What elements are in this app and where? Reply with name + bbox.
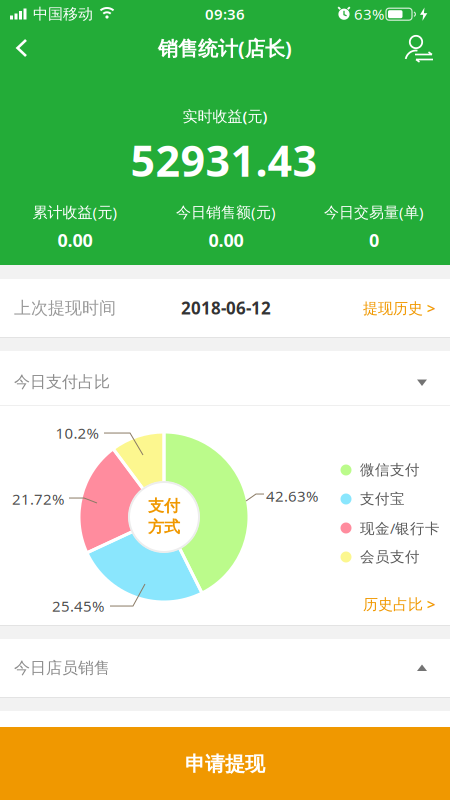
button[interactable]: 历史占比 > — [326, 594, 436, 614]
staticText: 42.63% — [266, 486, 318, 506]
staticText: 今日交易量(单) — [324, 202, 424, 222]
staticText: 今日支付占比 — [14, 372, 110, 392]
button[interactable]: 今日支付占比 — [0, 351, 450, 405]
staticText: 方式 — [148, 517, 180, 537]
staticText: 25.45% — [52, 596, 104, 616]
staticText: 今日销售额(元) — [176, 202, 276, 222]
staticText: 上次提现时间 — [14, 297, 116, 319]
staticText: 0 — [369, 228, 379, 252]
staticText: 21.72% — [12, 489, 64, 509]
staticText: 支付宝 — [360, 490, 405, 508]
staticText: 现金/银行卡 — [360, 518, 440, 538]
staticText: 10.2% — [55, 423, 98, 443]
staticText: 63% — [354, 4, 384, 24]
button[interactable]: 提现历史 > — [326, 298, 436, 318]
staticText: 支付 — [148, 496, 180, 516]
staticText: 0.00 — [208, 228, 243, 252]
staticText: 提现历史 > — [363, 298, 436, 318]
button[interactable]: Back — [0, 28, 44, 68]
staticText: 今日店员销售 — [14, 658, 110, 678]
staticText: 中国移动 — [33, 5, 93, 23]
button[interactable]: 今日店员销售 — [0, 639, 450, 697]
staticText: 会员支付 — [360, 548, 420, 566]
button[interactable]: 申请提现 — [0, 727, 450, 800]
staticText: 0.00 — [57, 228, 92, 252]
staticText: 累计收益(元) — [32, 202, 117, 222]
staticText: 历史占比 > — [363, 594, 436, 614]
staticText: 实时收益(元) — [182, 106, 267, 126]
staticText: 52931.43 — [130, 131, 317, 189]
staticText: 销售统计(店长) — [158, 34, 292, 62]
staticText: 微信支付 — [360, 461, 420, 479]
staticText: 申请提现 — [185, 751, 265, 777]
staticText: 2018-06-12 — [181, 296, 271, 320]
staticText: 09:36 — [205, 4, 245, 24]
button[interactable]: Switch account — [398, 30, 442, 70]
